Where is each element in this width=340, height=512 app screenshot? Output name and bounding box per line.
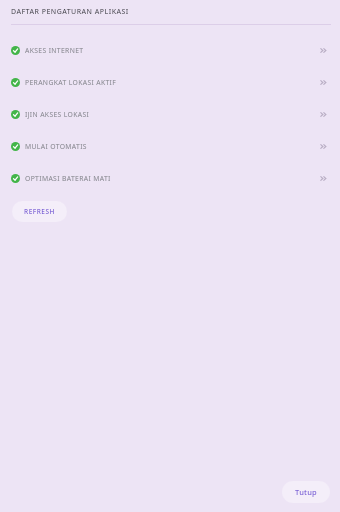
staticText: Tutup — [295, 487, 317, 497]
other: Granted — [11, 46, 20, 55]
button[interactable]: Granted — [0, 162, 340, 194]
staticText: MULAI OTOMATIS — [25, 142, 87, 151]
other: Granted — [11, 110, 20, 119]
button[interactable]: Tutup — [282, 481, 330, 503]
staticText: REFRESH — [24, 207, 55, 216]
button[interactable]: REFRESH — [12, 201, 67, 222]
other: Granted — [11, 174, 20, 183]
staticText: OPTIMASI BATERAI MATI — [25, 174, 111, 183]
other: Granted — [11, 78, 20, 87]
staticText: AKSES INTERNET — [25, 46, 84, 55]
button[interactable]: Granted — [0, 98, 340, 130]
other: Open — [319, 46, 329, 55]
other: Open — [319, 78, 329, 87]
staticText: PERANGKAT LOKASI AKTIF — [25, 78, 117, 87]
button[interactable]: Granted — [0, 130, 340, 162]
button[interactable]: Granted — [0, 66, 340, 98]
staticText: IJIN AKSES LOKASI — [25, 110, 90, 119]
button[interactable]: Granted — [0, 34, 340, 66]
staticText: DAFTAR PENGATURAN APLIKASI — [11, 7, 129, 17]
other: Open — [319, 142, 329, 151]
other: Granted — [11, 142, 20, 151]
other: Open — [319, 110, 329, 119]
other: Open — [319, 174, 329, 183]
